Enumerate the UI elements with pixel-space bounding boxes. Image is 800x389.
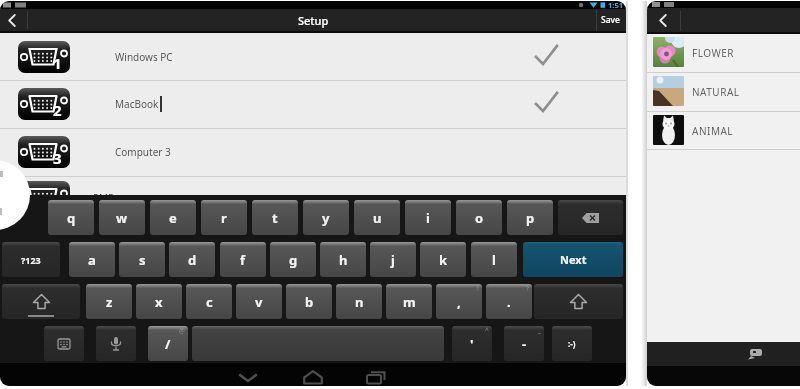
button[interactable] (238, 373, 258, 383)
button[interactable]: j (370, 242, 416, 277)
staticText: b (305, 293, 314, 311)
button[interactable]: FLOWER (647, 33, 800, 72)
staticText: ^ (485, 326, 489, 335)
button[interactable]: i (405, 200, 451, 235)
button[interactable]: a (69, 242, 115, 277)
button[interactable]: v (236, 284, 282, 319)
button[interactable] (44, 326, 84, 361)
button[interactable]: , (436, 284, 482, 319)
staticText: p (526, 209, 535, 227)
button[interactable]: :-) (552, 326, 592, 361)
staticText: NATURAL (692, 85, 740, 99)
staticText: x (155, 293, 163, 311)
staticText: Setup (298, 13, 329, 28)
staticText: _ (538, 326, 541, 335)
button[interactable]: . (486, 284, 532, 319)
staticText: k (439, 251, 448, 269)
staticText: o (475, 209, 484, 227)
button[interactable]: / (148, 326, 188, 361)
staticText: j (391, 251, 395, 269)
button[interactable] (0, 9, 40, 31)
button[interactable]: x (136, 284, 182, 319)
button[interactable] (558, 200, 623, 235)
staticText: . (507, 293, 511, 311)
button[interactable]: NATURAL (647, 72, 800, 111)
button[interactable]: l (471, 242, 517, 277)
button[interactable] (366, 371, 386, 384)
button[interactable]: m (386, 284, 432, 319)
button[interactable]: Save (594, 9, 626, 31)
button[interactable]: n (336, 284, 382, 319)
staticText: t (272, 209, 278, 227)
staticText: FLOWER (692, 46, 735, 60)
button[interactable] (647, 8, 681, 32)
button[interactable]: p (507, 200, 553, 235)
button[interactable]: 1 (0, 33, 626, 80)
staticText: n (355, 293, 364, 311)
button[interactable]: h (320, 242, 366, 277)
button[interactable]: f (220, 242, 266, 277)
button[interactable]: ' (452, 326, 492, 361)
button[interactable]: - (504, 326, 544, 361)
staticText: r (221, 209, 227, 227)
staticText: e (169, 209, 177, 227)
staticText: u (373, 209, 382, 227)
staticText: :-) (568, 338, 576, 349)
button[interactable]: Next (523, 242, 623, 277)
button[interactable] (2, 284, 80, 319)
staticText: , (457, 293, 461, 311)
staticText: Computer 3 (115, 145, 171, 159)
staticText: 1 (53, 53, 62, 73)
button[interactable]: s (119, 242, 165, 277)
staticText: a (88, 251, 96, 269)
button[interactable]: q (48, 200, 94, 235)
button[interactable] (534, 284, 623, 319)
button[interactable]: t (252, 200, 298, 235)
button[interactable]: o (456, 200, 502, 235)
staticText: w (116, 209, 128, 227)
button[interactable]: c (186, 284, 232, 319)
button[interactable] (96, 326, 136, 361)
button[interactable]: w (99, 200, 145, 235)
button[interactable]: e (150, 200, 196, 235)
staticText: - (522, 335, 527, 353)
button[interactable] (192, 326, 444, 361)
staticText: Next (560, 252, 587, 267)
staticText: c (206, 293, 213, 311)
staticText: g (289, 251, 298, 269)
staticText: h (339, 251, 348, 269)
staticText: ? (526, 284, 529, 293)
staticText: z (106, 293, 113, 311)
button[interactable] (0, 160, 30, 230)
button[interactable] (747, 347, 764, 361)
staticText: ' (470, 335, 474, 353)
staticText: Windows PC (115, 50, 173, 64)
staticText: 1:51 (608, 1, 623, 8)
staticText: 4 (53, 193, 62, 213)
staticText: @ (179, 326, 185, 335)
button[interactable]: u (354, 200, 400, 235)
button[interactable]: 2 (0, 80, 626, 128)
button[interactable]: ANIMAL (647, 111, 800, 150)
button[interactable] (303, 370, 323, 385)
staticText: q (67, 209, 76, 227)
button[interactable]: k (420, 242, 466, 277)
button[interactable]: ?123 (2, 242, 60, 277)
button[interactable]: 3 (0, 128, 626, 176)
button[interactable]: d (169, 242, 215, 277)
staticText: l (492, 251, 496, 269)
button[interactable]: b (286, 284, 332, 319)
staticText: y (322, 209, 330, 227)
staticText: Save (601, 14, 620, 26)
button[interactable]: g (270, 242, 316, 277)
button[interactable]: r (201, 200, 247, 235)
staticText: v (255, 293, 263, 311)
staticText: ! (477, 284, 479, 293)
staticText: d (188, 251, 197, 269)
button[interactable]: y (303, 200, 349, 235)
staticText: ?123 (21, 254, 41, 266)
staticText: 3 (53, 148, 62, 168)
staticText: PMP (93, 191, 115, 205)
staticText: ANIMAL (692, 124, 734, 138)
button[interactable]: z (86, 284, 132, 319)
